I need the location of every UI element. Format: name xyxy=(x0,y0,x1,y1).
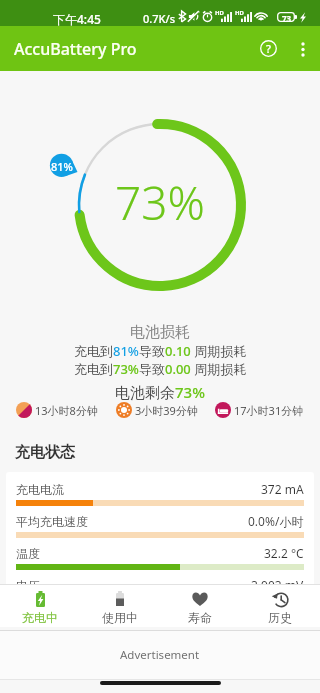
staticText: 历史 xyxy=(268,610,292,625)
staticText: HD xyxy=(235,9,244,17)
staticText: 3.903 mV xyxy=(251,577,304,590)
button[interactable]: Help xyxy=(252,32,285,65)
staticText: 充电电流 xyxy=(16,482,64,497)
staticText: Advertisement xyxy=(120,647,200,663)
button[interactable]: 平均充电速度 xyxy=(6,504,314,536)
staticText: 电压 xyxy=(16,578,40,590)
button[interactable]: More options xyxy=(286,32,320,66)
staticText: 充电中 xyxy=(22,610,58,625)
staticText: 17小时31分钟 xyxy=(234,403,304,418)
staticText: 372 mA xyxy=(261,481,304,497)
staticText: 电池剩余73% xyxy=(115,382,205,402)
staticText: 平均充电速度 xyxy=(16,514,88,529)
button[interactable]: 寿命 xyxy=(160,585,240,627)
staticText: 73% xyxy=(115,171,205,234)
button[interactable]: 使用中 xyxy=(80,585,160,627)
staticText: 充电到81%导致0.10 周期损耗 xyxy=(74,342,247,360)
staticText: 电池损耗 xyxy=(130,323,190,342)
staticText: 充电到73%导致0.00 周期损耗 xyxy=(74,360,247,378)
button[interactable]: 历史 xyxy=(240,585,320,627)
staticText: 81% xyxy=(51,159,73,174)
staticText: 温度 xyxy=(16,546,40,561)
staticText: 73 xyxy=(282,13,292,24)
staticText: 3小时39分钟 xyxy=(135,403,198,418)
staticText: 下午4:45 xyxy=(53,11,101,27)
staticText: ? xyxy=(266,41,271,56)
staticText: 13小时8分钟 xyxy=(35,403,98,418)
staticText: HD xyxy=(215,9,224,17)
button[interactable]: 温度 xyxy=(6,536,314,568)
staticText: 32.2 °C xyxy=(264,545,304,561)
button[interactable]: 充电电流 xyxy=(6,472,314,504)
staticText: 使用中 xyxy=(102,610,138,625)
staticText: 0.7K/s xyxy=(143,11,176,26)
staticText: 寿命 xyxy=(188,610,212,625)
button[interactable]: 充电中 xyxy=(0,585,80,627)
button[interactable]: 电压 xyxy=(6,568,314,590)
staticText: 0.0%/小时 xyxy=(248,513,304,529)
staticText: AccuBattery Pro xyxy=(14,38,137,60)
staticText: 充电状态 xyxy=(15,443,75,462)
